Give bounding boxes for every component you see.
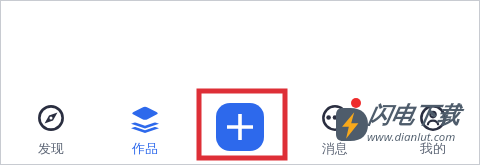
staticText: www.dianlut.com bbox=[367, 129, 456, 145]
staticText: 我的 bbox=[420, 140, 446, 156]
button[interactable]: 消息 bbox=[287, 96, 383, 162]
staticText: 消息 bbox=[322, 140, 348, 156]
staticText: 发现 bbox=[38, 140, 64, 156]
button[interactable]: Create bbox=[192, 96, 288, 162]
button[interactable]: 我的 bbox=[385, 96, 480, 162]
staticText: 闪电下载 bbox=[367, 101, 459, 130]
button[interactable]: 作品 bbox=[97, 96, 193, 162]
staticText: 作品 bbox=[132, 140, 158, 156]
button[interactable]: 发现 bbox=[3, 96, 99, 162]
